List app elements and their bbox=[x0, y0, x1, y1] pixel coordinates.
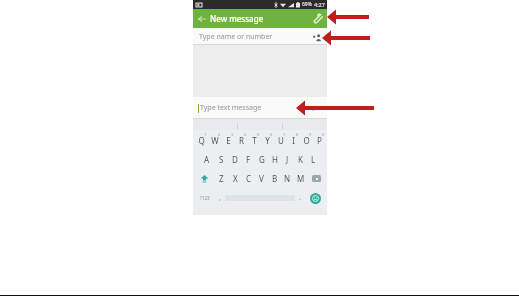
staticText: D bbox=[232, 154, 238, 165]
staticText: C bbox=[246, 173, 252, 184]
staticText: L bbox=[311, 154, 316, 165]
button[interactable]: Add recipient bbox=[310, 30, 324, 44]
button[interactable]: V bbox=[255, 169, 268, 188]
button[interactable]: Z bbox=[214, 169, 228, 188]
button[interactable]: E bbox=[222, 130, 235, 150]
staticText: S bbox=[219, 154, 224, 165]
staticText: 0 bbox=[322, 132, 325, 137]
button[interactable]: Space bbox=[225, 193, 295, 203]
staticText: X bbox=[233, 173, 238, 184]
staticText: 5 bbox=[257, 132, 260, 137]
staticText: P bbox=[317, 135, 322, 146]
button[interactable]: N bbox=[281, 169, 294, 188]
staticText: 69% bbox=[302, 1, 312, 8]
button[interactable]: P bbox=[313, 130, 326, 150]
button[interactable]: ?123 bbox=[195, 188, 215, 208]
staticText: H bbox=[272, 154, 278, 165]
button[interactable]: . bbox=[295, 188, 305, 208]
button[interactable]: Backspace bbox=[307, 169, 326, 188]
staticText: I bbox=[292, 135, 295, 146]
button[interactable]: W bbox=[208, 130, 222, 150]
button[interactable]: C bbox=[242, 169, 255, 188]
staticText: Q bbox=[198, 135, 205, 146]
staticText: , bbox=[219, 193, 221, 203]
staticText: G bbox=[259, 154, 265, 165]
staticText: A bbox=[204, 154, 210, 165]
staticText: W bbox=[211, 135, 219, 146]
staticText: R bbox=[239, 135, 244, 146]
staticText: Type text message bbox=[200, 103, 262, 113]
staticText: O bbox=[303, 135, 310, 146]
staticText: ?123 bbox=[200, 195, 210, 201]
button[interactable]: , bbox=[215, 188, 225, 208]
staticText: T bbox=[252, 135, 257, 146]
staticText: F bbox=[246, 154, 251, 165]
staticText: U bbox=[278, 135, 284, 146]
button[interactable]: J bbox=[281, 150, 294, 169]
staticText: 3 bbox=[231, 132, 234, 137]
staticText: J bbox=[286, 154, 289, 165]
staticText: N bbox=[284, 173, 291, 184]
staticText: 1 bbox=[204, 132, 207, 137]
staticText: M bbox=[297, 173, 305, 184]
staticText: E bbox=[226, 135, 231, 146]
staticText: Type name or number bbox=[199, 32, 273, 42]
staticText: Y bbox=[265, 135, 270, 146]
button[interactable]: T bbox=[248, 130, 261, 150]
button[interactable]: Send bbox=[308, 100, 324, 116]
button[interactable]: G bbox=[255, 150, 268, 169]
button[interactable]: X bbox=[228, 169, 242, 188]
button[interactable]: S bbox=[214, 150, 228, 169]
button[interactable]: K bbox=[294, 150, 307, 169]
staticText: 4 bbox=[244, 132, 247, 137]
staticText: . bbox=[299, 193, 301, 203]
staticText: New message bbox=[210, 13, 264, 24]
staticText: 4:27 bbox=[314, 1, 325, 8]
button[interactable]: O bbox=[300, 130, 313, 150]
button[interactable]: Y bbox=[261, 130, 274, 150]
staticText: 9 bbox=[309, 132, 312, 137]
button[interactable]: Emoji bbox=[305, 188, 325, 208]
button[interactable]: M bbox=[294, 169, 307, 188]
staticText: B bbox=[272, 173, 278, 184]
button[interactable]: A bbox=[200, 150, 214, 169]
staticText: 7 bbox=[283, 132, 286, 137]
staticText: 2 bbox=[218, 132, 221, 137]
button[interactable]: Shift bbox=[194, 169, 214, 188]
button[interactable]: D bbox=[228, 150, 242, 169]
button[interactable]: Q bbox=[194, 130, 208, 150]
staticText: K bbox=[298, 154, 303, 165]
staticText: 6 bbox=[270, 132, 273, 137]
button[interactable]: R bbox=[235, 130, 248, 150]
button[interactable]: B bbox=[268, 169, 281, 188]
button[interactable]: F bbox=[242, 150, 255, 169]
button[interactable]: H bbox=[268, 150, 281, 169]
staticText: V bbox=[259, 173, 264, 184]
staticText: Z bbox=[219, 173, 224, 184]
staticText: 8 bbox=[296, 132, 299, 137]
button[interactable]: Attach bbox=[308, 9, 327, 28]
button[interactable]: U bbox=[274, 130, 287, 150]
button[interactable]: I bbox=[287, 130, 300, 150]
button[interactable]: Navigate up bbox=[193, 10, 210, 27]
button[interactable]: L bbox=[307, 150, 320, 169]
